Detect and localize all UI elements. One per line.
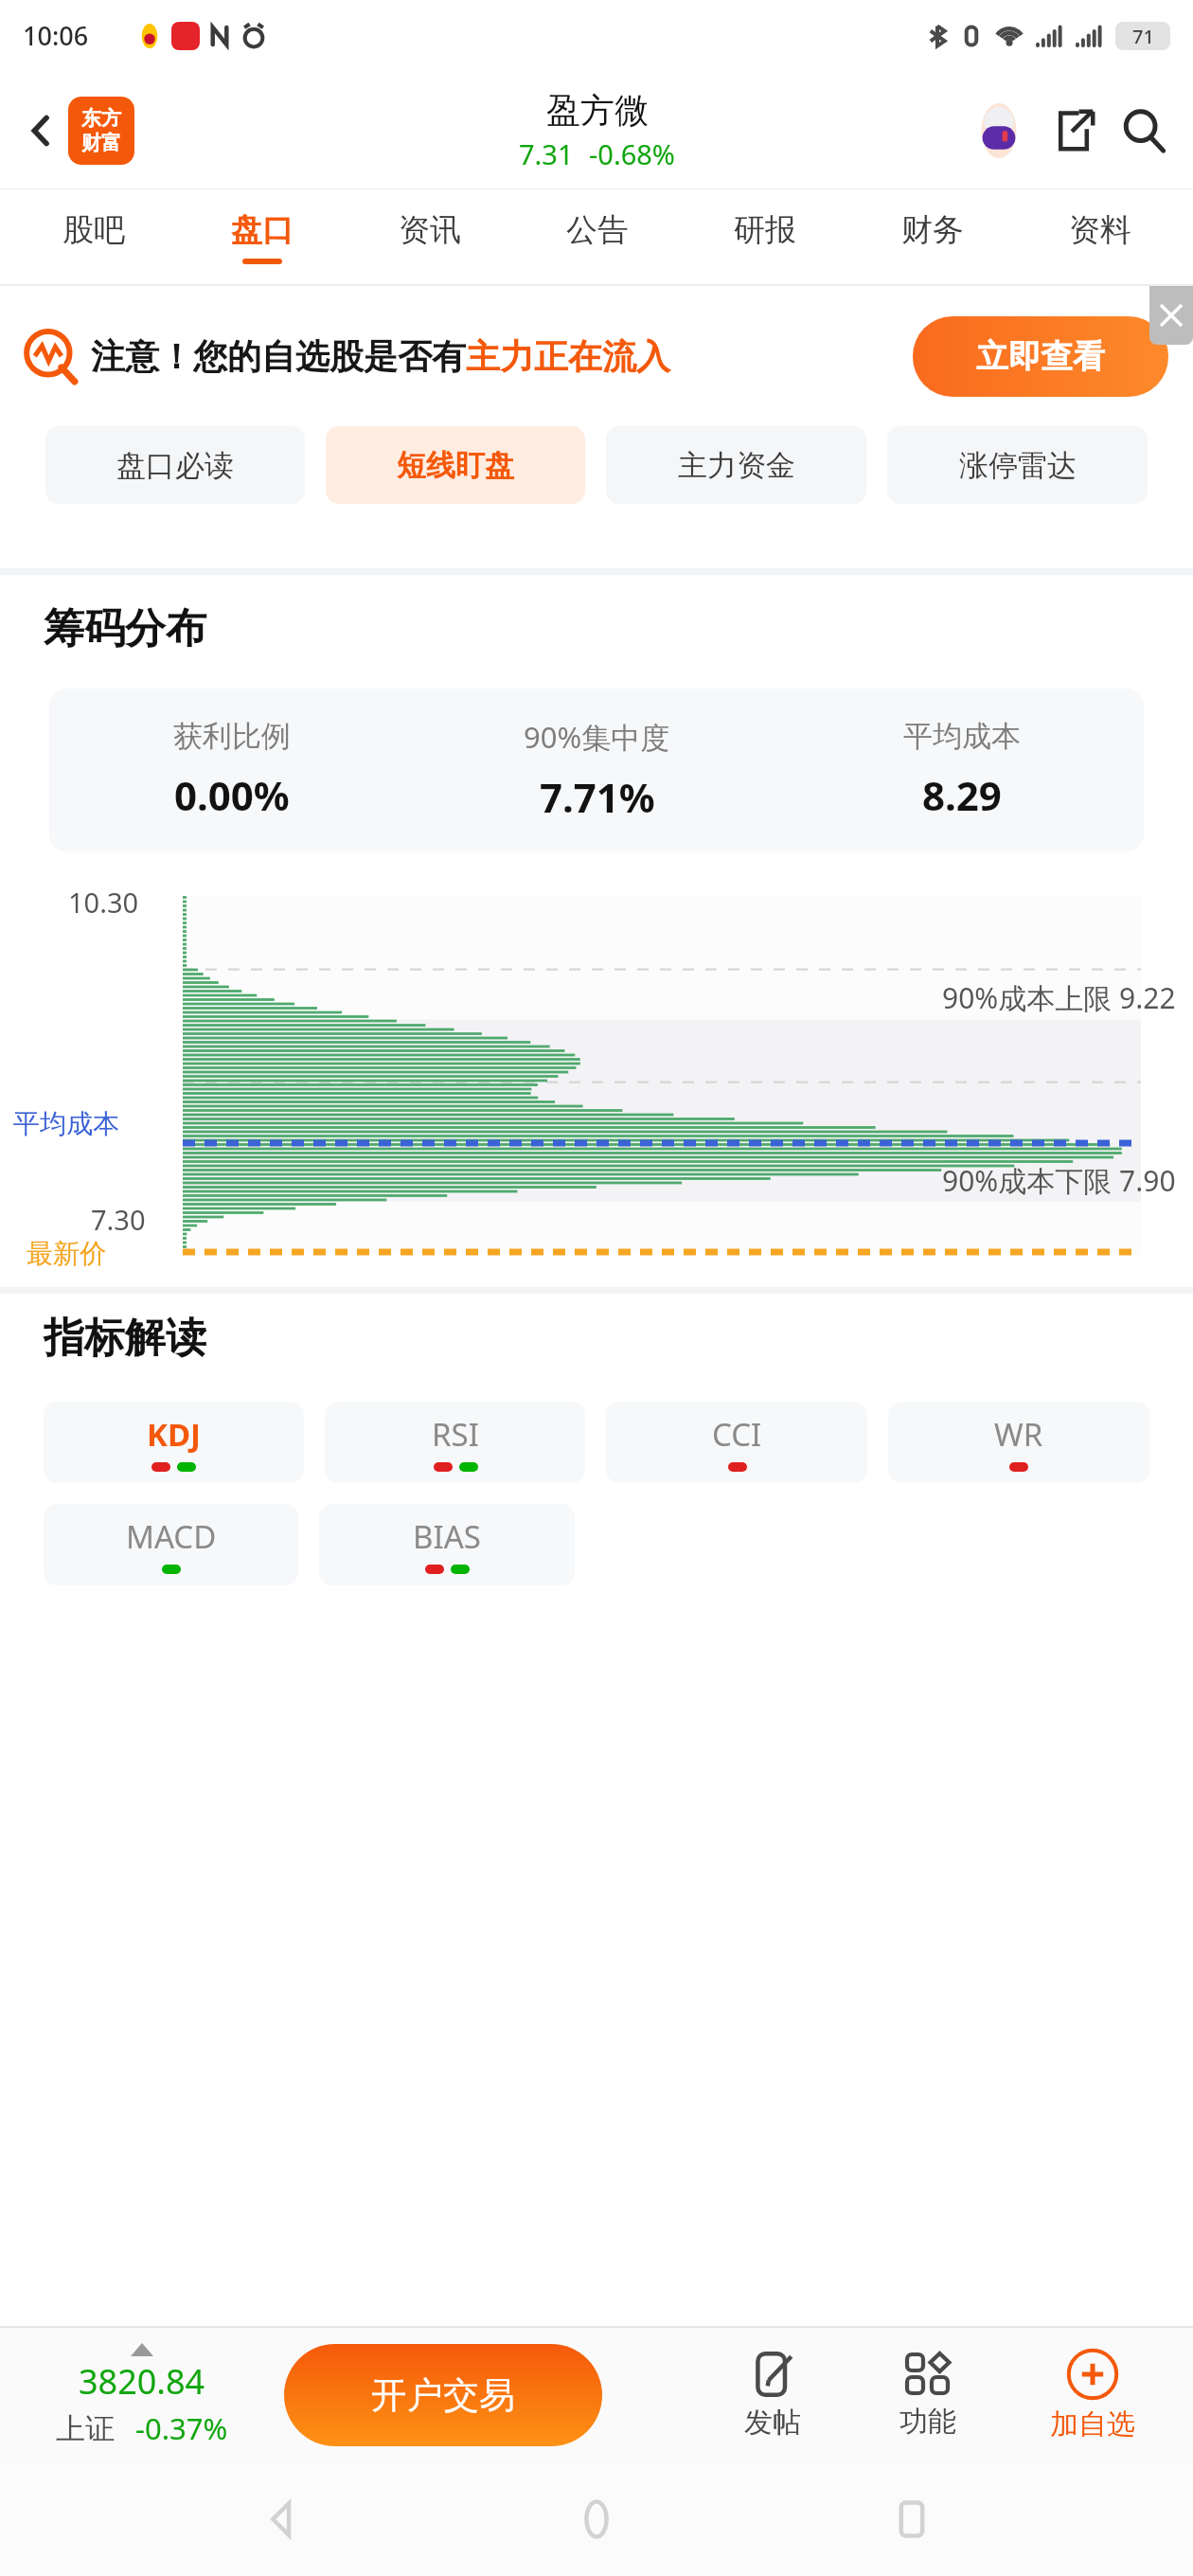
staticText: BIAS [413, 1515, 481, 1558]
staticText: -0.37% [135, 2408, 228, 2448]
staticText: 获利比例 [173, 718, 291, 755]
button[interactable]: WR [888, 1402, 1149, 1483]
staticText: 90%成本上限 9.22 [942, 978, 1176, 1017]
staticText: CCI [712, 1413, 762, 1456]
staticText: 注意！您的自选股是否有 [91, 335, 466, 378]
button[interactable]: 发帖 [716, 2350, 829, 2441]
staticText: 10:06 [23, 18, 89, 53]
button[interactable]: 股吧 [9, 189, 178, 284]
button[interactable]: 公告 [513, 189, 681, 284]
button[interactable]: 财务 [848, 189, 1016, 284]
button[interactable]: 盘口 [178, 189, 346, 284]
button[interactable]: 资讯 [346, 189, 513, 284]
staticText: 7.31 [519, 135, 574, 172]
staticText: 股吧 [62, 210, 125, 250]
button[interactable]: 功能 [871, 2351, 985, 2440]
button[interactable]: 主页 [563, 2486, 630, 2552]
staticText: 3820.84 [79, 2358, 205, 2405]
staticText: 90%成本下限 7.90 [942, 1161, 1176, 1200]
staticText: -0.68% [589, 135, 675, 172]
button[interactable]: 立即查看 [913, 316, 1168, 397]
button[interactable]: 资料 [1016, 189, 1184, 284]
button[interactable]: MACD [44, 1504, 298, 1585]
button[interactable]: 开户交易 [284, 2344, 602, 2446]
button[interactable]: 涨停雷达 [887, 426, 1148, 504]
button[interactable]: 3820.84 [0, 2328, 284, 2462]
staticText: 主力资金 [678, 447, 795, 484]
button[interactable]: CCI [606, 1402, 867, 1483]
staticText: 8.29 [922, 768, 1002, 822]
staticText: 10.30 [68, 884, 139, 921]
button[interactable]: 盘口必读 [45, 426, 305, 504]
staticText: 东方 [81, 106, 121, 131]
staticText: 加自选 [1050, 2406, 1135, 2442]
button[interactable]: KDJ [44, 1402, 304, 1483]
staticText: 平均成本 [13, 1107, 119, 1140]
staticText: MACD [126, 1515, 217, 1558]
button[interactable]: 研报 [681, 189, 848, 284]
staticText: 公告 [566, 210, 629, 250]
staticText: 平均成本 [903, 718, 1021, 755]
button[interactable]: 返回 [17, 89, 142, 172]
staticText: 资讯 [399, 210, 461, 250]
staticText: 资料 [1069, 210, 1131, 250]
staticText: 0.00% [174, 768, 290, 822]
staticText: 最新价 [27, 1237, 106, 1270]
staticText: 开户交易 [371, 2372, 515, 2418]
staticText: 财富 [81, 131, 121, 155]
staticText: 财务 [901, 210, 964, 250]
staticText: 功能 [899, 2404, 956, 2440]
button[interactable]: BIAS [319, 1504, 575, 1585]
button[interactable]: 获利比例 [49, 689, 1144, 851]
button[interactable]: AI助手 [970, 101, 1028, 160]
button[interactable]: RSI [325, 1402, 585, 1483]
staticText: 盈方微 [546, 89, 649, 132]
button[interactable]: 最近任务 [879, 2486, 945, 2552]
button[interactable]: 主力资金 [606, 426, 866, 504]
staticText: 涨停雷达 [959, 447, 1077, 484]
staticText: RSI [432, 1413, 479, 1456]
staticText: 盘口 [231, 210, 294, 250]
staticText: 立即查看 [976, 336, 1105, 377]
staticText: 7.30 [91, 1201, 146, 1238]
staticText: WR [994, 1413, 1043, 1456]
staticText: 上证 [56, 2410, 115, 2447]
staticText: 研报 [734, 210, 796, 250]
button[interactable]: 加自选 [1026, 2348, 1159, 2442]
staticText: 71 [1132, 24, 1154, 49]
button[interactable]: 关闭 [1149, 286, 1193, 345]
staticText: 90%集中度 [524, 717, 670, 757]
button[interactable]: 短线盯盘 [326, 426, 585, 504]
button[interactable]: 注意！您的自选股是否有 [25, 286, 1168, 426]
button[interactable]: 分享 [1045, 102, 1102, 159]
button[interactable]: 搜索 [1115, 102, 1172, 159]
button[interactable]: 返回 [249, 2486, 315, 2552]
staticText: KDJ [147, 1413, 201, 1456]
staticText: 指标解读 [44, 1313, 206, 1364]
staticText: 主力正在流入 [466, 335, 670, 378]
staticText: 7.71% [540, 770, 655, 824]
staticText: 短线盯盘 [397, 447, 514, 484]
staticText: 发帖 [744, 2405, 801, 2441]
staticText: 筹码分布 [44, 603, 206, 654]
staticText: 盘口必读 [116, 447, 234, 484]
